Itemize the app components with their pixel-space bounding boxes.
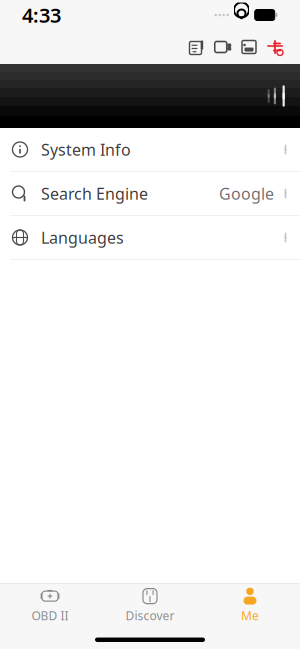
button[interactable]: System Info [0,128,300,172]
staticText: Search Engine [41,183,148,204]
staticText: Languages [41,227,124,248]
button[interactable]: Photos [236,34,262,60]
staticText: Google [219,183,274,204]
staticText: Discover [125,608,174,623]
staticText: OBD II [31,608,68,623]
staticText: System Info [41,139,131,160]
button[interactable]: OBD II [0,584,100,628]
button[interactable]: Discover [100,584,200,628]
button[interactable]: Record video [210,34,236,60]
button[interactable]: Me [200,584,300,628]
button[interactable]: Bluetooth disconnected [262,34,288,60]
button[interactable]: Search Engine [0,172,300,216]
button[interactable]: Languages [0,216,300,260]
button[interactable]: Featured banner [0,64,300,128]
staticText: 4:33 [22,2,61,28]
button[interactable]: Notes [184,34,210,60]
staticText: Me [241,608,259,623]
